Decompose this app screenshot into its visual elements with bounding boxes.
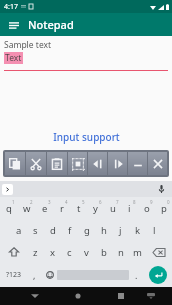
button[interactable]: p xyxy=(155,197,172,219)
staticText: 7 xyxy=(116,199,119,205)
staticText: Sample text xyxy=(4,39,52,51)
button[interactable]: ?123 xyxy=(0,263,27,287)
button[interactable]: w xyxy=(18,197,36,219)
staticText: 2 xyxy=(30,199,33,205)
staticText: o xyxy=(144,202,150,215)
staticText: 1 xyxy=(12,199,15,205)
button[interactable]: h xyxy=(95,219,112,241)
staticText: 8 xyxy=(133,199,136,205)
button[interactable]: l xyxy=(146,219,163,241)
staticText: . xyxy=(135,269,138,281)
staticText: u xyxy=(110,202,116,215)
button[interactable]: Cut xyxy=(26,152,46,175)
staticText: , xyxy=(33,269,36,281)
staticText: ?123 xyxy=(6,270,22,280)
button[interactable]: a xyxy=(10,219,27,241)
staticText: w xyxy=(23,202,31,215)
staticText: 9 xyxy=(150,199,153,205)
staticText: k xyxy=(135,224,141,237)
staticText: s xyxy=(33,224,38,237)
button[interactable]: m xyxy=(129,241,146,263)
staticText: j xyxy=(119,224,122,237)
button[interactable]: Close xyxy=(148,152,167,175)
button[interactable]: Paste xyxy=(47,152,67,175)
button[interactable]: Shift xyxy=(0,241,27,263)
button[interactable]: z xyxy=(27,241,44,263)
button[interactable]: q xyxy=(0,197,18,219)
button[interactable]: c xyxy=(61,241,78,263)
staticText: c xyxy=(67,246,72,259)
button[interactable]: Select all xyxy=(68,152,87,175)
button[interactable]: k xyxy=(129,219,146,241)
staticText: r xyxy=(60,202,64,215)
button[interactable]: Enter xyxy=(149,266,167,284)
button[interactable]: Recent apps xyxy=(106,287,136,305)
staticText: g xyxy=(84,224,90,237)
staticText: n xyxy=(118,246,124,259)
button[interactable]: d xyxy=(44,219,61,241)
button[interactable]: More options xyxy=(2,184,13,195)
staticText: 0 xyxy=(167,199,170,205)
button[interactable]: g xyxy=(78,219,95,241)
button[interactable]: Minimize xyxy=(128,152,147,175)
staticText: a xyxy=(16,224,22,237)
button[interactable]: o xyxy=(138,197,155,219)
staticText: p xyxy=(161,202,167,215)
button[interactable]: y xyxy=(87,197,104,219)
button[interactable]: Back xyxy=(20,287,50,305)
staticText: h xyxy=(101,224,107,237)
staticText: Text xyxy=(5,52,22,64)
button[interactable]: i xyxy=(121,197,138,219)
button[interactable]: e xyxy=(36,197,53,219)
staticText: y xyxy=(93,202,98,215)
button[interactable]: t xyxy=(70,197,87,219)
button[interactable]: f xyxy=(61,219,78,241)
button[interactable]: Move cursor left xyxy=(88,152,107,175)
staticText: e xyxy=(42,202,48,215)
staticText: b xyxy=(101,246,107,259)
button[interactable]: s xyxy=(27,219,44,241)
staticText: 6 xyxy=(99,199,102,205)
button[interactable]: u xyxy=(104,197,121,219)
button[interactable]: j xyxy=(112,219,129,241)
staticText: x xyxy=(50,246,56,259)
staticText: 4 xyxy=(65,199,68,205)
staticText: q xyxy=(6,202,12,215)
staticText: f xyxy=(68,224,72,237)
button[interactable]: Move cursor right xyxy=(108,152,127,175)
button[interactable]: Period xyxy=(129,263,144,287)
button[interactable]: r xyxy=(53,197,70,219)
button[interactable]: n xyxy=(112,241,129,263)
button[interactable]: Emoji xyxy=(42,263,57,287)
button[interactable]: Hide keyboard xyxy=(136,287,166,305)
button[interactable]: Backspace xyxy=(146,241,172,263)
button[interactable]: Comma xyxy=(27,263,42,287)
staticText: 4:17 xyxy=(4,2,18,12)
button[interactable]: Open navigation drawer xyxy=(6,17,22,33)
staticText: Input support xyxy=(53,130,120,144)
staticText: i xyxy=(128,202,131,215)
button[interactable]: Home xyxy=(63,287,93,305)
staticText: Notepad xyxy=(28,17,74,32)
staticText: l xyxy=(153,224,156,237)
staticText: z xyxy=(33,246,38,259)
staticText: v xyxy=(84,246,89,259)
staticText: d xyxy=(50,224,56,237)
button[interactable]: Copy xyxy=(5,152,25,175)
button[interactable]: Voice input xyxy=(155,183,167,195)
staticText: m xyxy=(133,246,142,259)
button[interactable]: x xyxy=(44,241,61,263)
button[interactable]: v xyxy=(78,241,95,263)
staticText: 5 xyxy=(82,199,85,205)
button[interactable]: b xyxy=(95,241,112,263)
staticText: 3 xyxy=(48,199,51,205)
staticText: t xyxy=(77,202,81,215)
